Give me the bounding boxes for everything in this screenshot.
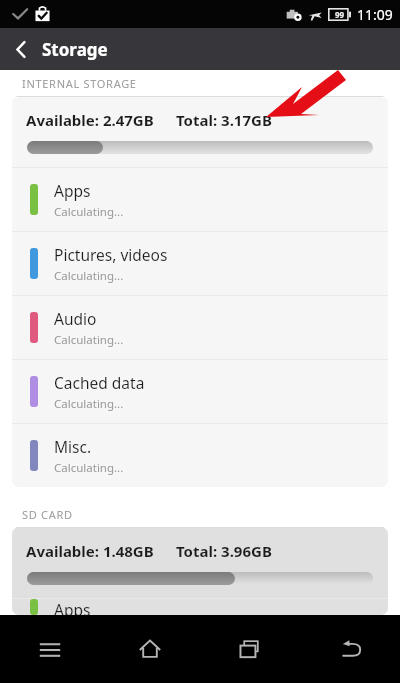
staticText: Total: 3.17GB bbox=[176, 110, 272, 130]
staticText: Calculating... bbox=[54, 332, 124, 348]
button[interactable]: Home bbox=[100, 615, 200, 683]
staticText: Apps bbox=[54, 599, 91, 615]
staticText: SD CARD bbox=[22, 507, 73, 522]
button[interactable]: Back bbox=[300, 615, 400, 683]
staticText: Storage bbox=[42, 38, 108, 61]
staticText: Apps bbox=[54, 180, 91, 201]
staticText: Pictures, videos bbox=[54, 244, 168, 265]
staticText: 11:09 bbox=[357, 5, 393, 24]
button[interactable]: Audio bbox=[12, 296, 388, 359]
staticText: Calculating... bbox=[54, 204, 124, 220]
button[interactable]: Misc. bbox=[12, 424, 388, 487]
staticText: INTERNAL STORAGE bbox=[22, 76, 137, 91]
staticText: Misc. bbox=[54, 436, 92, 457]
button[interactable]: Navigate up bbox=[0, 28, 42, 70]
button[interactable]: Cached data bbox=[12, 360, 388, 423]
button[interactable]: Recent apps bbox=[200, 615, 300, 683]
staticText: 99 bbox=[335, 9, 345, 20]
button[interactable]: Menu bbox=[0, 615, 100, 683]
staticText: Calculating... bbox=[54, 396, 124, 412]
staticText: Calculating... bbox=[54, 268, 124, 284]
staticText: Total: 3.96GB bbox=[176, 541, 272, 561]
staticText: Calculating... bbox=[54, 460, 124, 476]
staticText: Cached data bbox=[54, 372, 145, 393]
button[interactable]: Apps bbox=[12, 599, 388, 615]
button[interactable]: Pictures, videos bbox=[12, 232, 388, 295]
staticText: Available: 2.47GB bbox=[26, 110, 154, 130]
button[interactable]: Apps bbox=[12, 168, 388, 231]
staticText: Available: 1.48GB bbox=[26, 541, 154, 561]
staticText: Audio bbox=[54, 308, 97, 329]
